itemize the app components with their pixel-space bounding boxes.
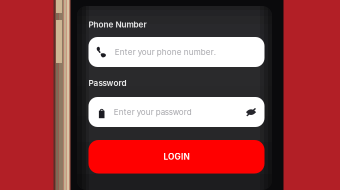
button[interactable]: Enter your phone number. — [88, 37, 264, 67]
staticText: Phone Number — [88, 20, 146, 29]
staticText: Enter your phone number. — [115, 47, 216, 57]
staticText: LOGIN — [163, 152, 189, 162]
button[interactable]: LOGIN — [88, 140, 264, 173]
staticText: Enter your password — [114, 107, 192, 117]
staticText: Password — [88, 78, 126, 88]
button[interactable]: Enter your password — [88, 97, 264, 127]
